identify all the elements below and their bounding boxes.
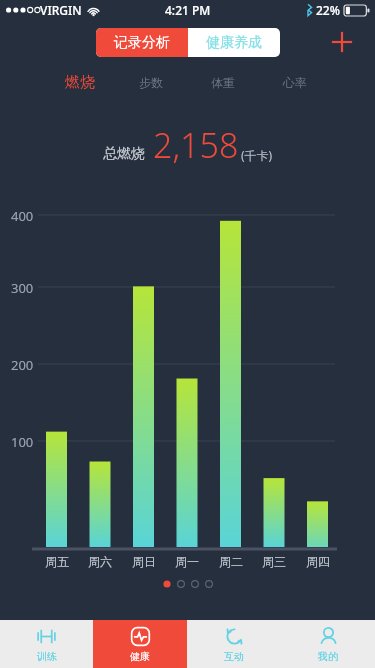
staticText: 4:21 PM	[165, 2, 211, 18]
staticText: 300	[11, 279, 34, 297]
button[interactable]: 互动	[187, 620, 281, 668]
staticText: 周二	[219, 554, 243, 569]
staticText: 周五	[45, 554, 69, 569]
button[interactable]: 健康养成	[188, 28, 280, 57]
staticText: 我的	[318, 650, 338, 663]
button[interactable]: 记录分析	[96, 28, 188, 57]
button[interactable]: 心率	[259, 64, 331, 100]
button[interactable]: 步数	[115, 64, 187, 100]
button[interactable]: 体重	[187, 64, 259, 100]
button[interactable]: 我的	[281, 620, 375, 668]
staticText: 记录分析	[114, 34, 170, 52]
staticText: 100	[11, 433, 34, 451]
staticText: 周日	[132, 554, 156, 569]
staticText: 体重	[211, 75, 235, 90]
staticText: 200	[11, 356, 34, 374]
staticText: 互动	[224, 650, 244, 663]
staticText: VIRGIN	[40, 2, 82, 18]
button[interactable]: Add	[325, 25, 359, 59]
staticText: 400	[11, 207, 34, 225]
staticText: 燃烧	[65, 73, 95, 92]
staticText: 周六	[88, 554, 112, 569]
button[interactable]: 燃烧	[44, 64, 115, 100]
staticText: (千卡)	[241, 147, 273, 163]
button[interactable]: 训练	[0, 620, 93, 668]
staticText: 心率	[283, 75, 307, 90]
staticText: 健康	[130, 650, 150, 663]
staticText: 总燃烧	[103, 145, 145, 163]
staticText: 周四	[306, 554, 330, 569]
staticText: 周三	[262, 554, 286, 569]
staticText: 训练	[37, 650, 57, 663]
staticText: 2,158	[153, 122, 239, 168]
staticText: 健康养成	[206, 34, 262, 52]
staticText: 周一	[175, 554, 199, 569]
staticText: 步数	[139, 75, 163, 90]
staticText: 22%	[316, 2, 340, 18]
button[interactable]: 健康	[93, 620, 187, 668]
